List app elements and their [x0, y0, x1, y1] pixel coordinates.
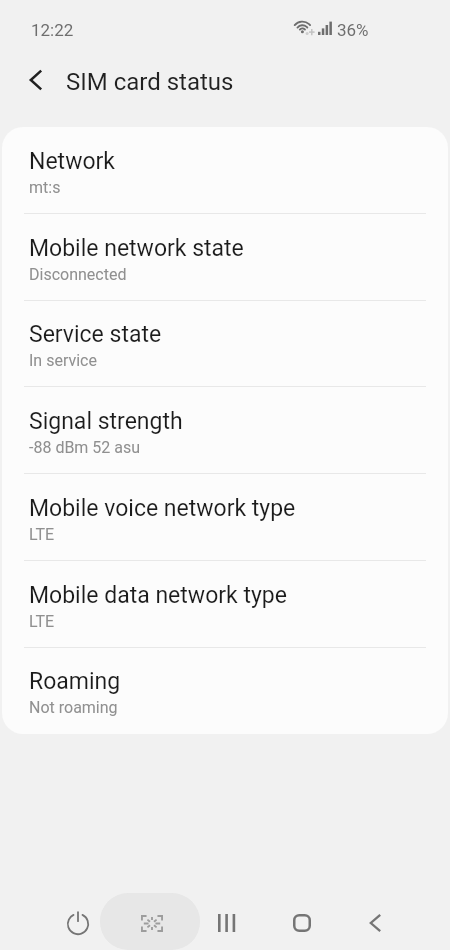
button[interactable]: Mobile network state [2, 214, 448, 301]
staticText: Mobile voice network type [29, 495, 296, 522]
staticText: Disconnected [29, 265, 127, 284]
staticText: LTE [29, 612, 55, 631]
button[interactable]: Recent apps [207, 903, 247, 943]
staticText: Network [29, 148, 115, 175]
staticText: SIM card status [66, 68, 234, 96]
button[interactable]: Screenshot [100, 893, 200, 950]
staticText: Mobile network state [29, 235, 244, 262]
button[interactable]: Network [2, 127, 448, 214]
staticText: 36% [337, 20, 369, 40]
button[interactable]: Power [58, 903, 98, 943]
staticText: 12:22 [31, 20, 74, 40]
button[interactable]: Mobile voice network type [2, 474, 448, 561]
staticText: -88 dBm 52 asu [29, 438, 141, 457]
button[interactable]: Service state [2, 300, 448, 387]
button[interactable]: Signal strength [2, 387, 448, 474]
button[interactable]: Home [282, 903, 322, 943]
staticText: Not roaming [29, 698, 118, 717]
button[interactable]: Roaming [2, 647, 448, 734]
button[interactable]: Back [355, 903, 395, 943]
staticText: Signal strength [29, 408, 183, 435]
button[interactable]: Mobile data network type [2, 561, 448, 648]
staticText: mt:s [29, 178, 61, 197]
button[interactable]: Navigate up [16, 59, 58, 101]
staticText: Service state [29, 321, 162, 348]
staticText: LTE [29, 525, 55, 544]
staticText: Mobile data network type [29, 582, 287, 609]
staticText: Roaming [29, 668, 121, 695]
staticText: In service [29, 351, 97, 370]
